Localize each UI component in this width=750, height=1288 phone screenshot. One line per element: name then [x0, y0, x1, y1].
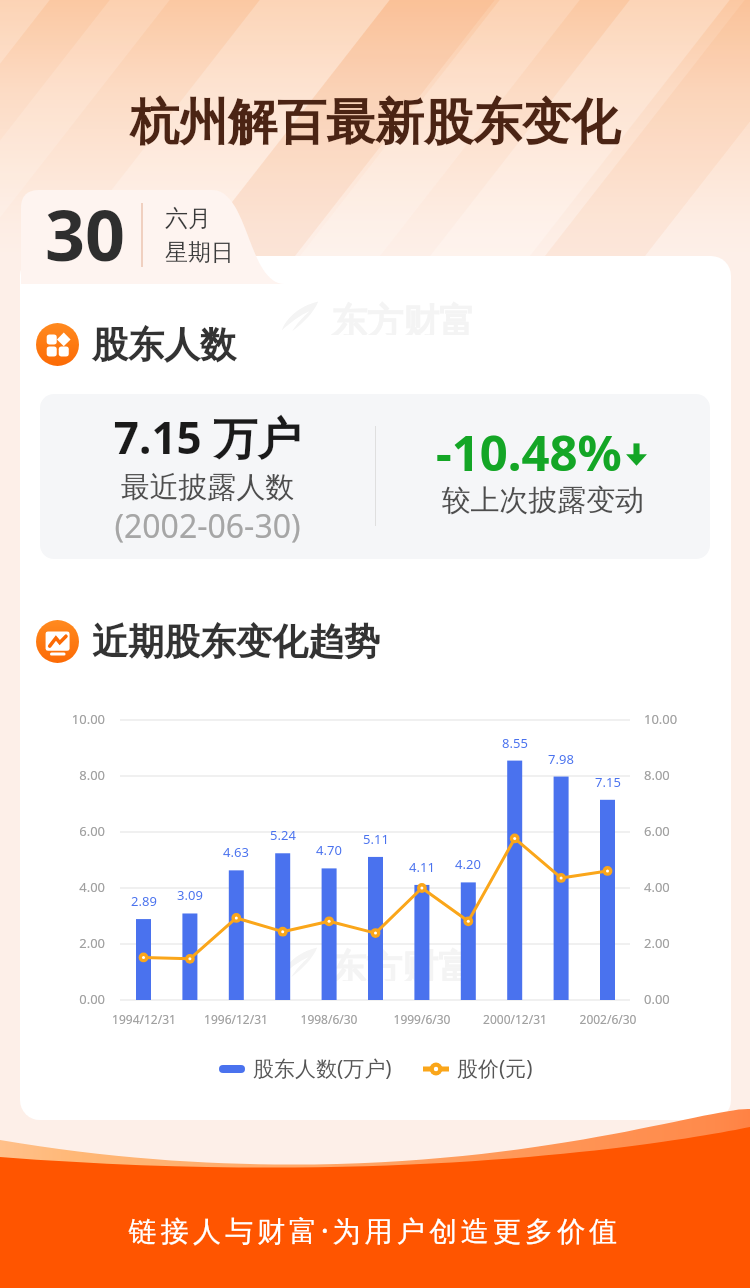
staticText: 1998/6/30	[274, 1011, 384, 1027]
staticText: 7.15 万户	[40, 407, 375, 467]
staticText: 4.20	[438, 855, 498, 873]
staticText: 股东人数	[92, 322, 236, 367]
staticText: 最近披露人数	[40, 469, 375, 506]
staticText: (2002-06-30)	[40, 504, 375, 548]
staticText: 0.00	[644, 990, 704, 1008]
staticText: 链接人与财富·为用户创造更多价值	[0, 1211, 750, 1249]
staticText: 杭州解百最新股东变化	[0, 92, 750, 154]
button[interactable]: 股东人数	[36, 322, 236, 367]
staticText: 8.00	[45, 766, 105, 784]
staticText: 较上次披露变动	[376, 482, 710, 519]
staticText: -10.48%	[436, 419, 622, 486]
staticText: 六月	[165, 204, 211, 233]
staticText: 10.00	[644, 710, 704, 728]
staticText: 0.00	[45, 990, 105, 1008]
staticText: 7.15	[578, 773, 638, 791]
staticText: 1999/6/30	[367, 1011, 477, 1027]
staticText: 30	[45, 186, 126, 280]
staticText: 1996/12/31	[181, 1011, 291, 1027]
staticText: 10.00	[45, 710, 105, 728]
staticText: 6.00	[644, 822, 704, 840]
staticText: 股价(元)	[457, 1054, 533, 1083]
staticText: 2002/6/30	[553, 1011, 663, 1027]
staticText: 近期股东变化趋势	[92, 619, 380, 664]
button[interactable]	[21, 190, 321, 284]
staticText: 4.00	[644, 878, 704, 896]
staticText: 股东人数(万户)	[253, 1054, 392, 1083]
staticText: 8.00	[644, 766, 704, 784]
staticText: 4.70	[299, 841, 359, 859]
staticText: 4.63	[206, 843, 266, 861]
staticText: 3.09	[160, 886, 220, 904]
staticText: 东方财富	[330, 945, 474, 981]
staticText: 8.55	[485, 734, 545, 752]
staticText: 6.00	[45, 822, 105, 840]
staticText: 2.00	[644, 934, 704, 952]
staticText: 2.00	[45, 934, 105, 952]
staticText: 星期日	[165, 238, 234, 267]
button[interactable]: 近期股东变化趋势	[36, 619, 380, 664]
staticText: 4.11	[392, 858, 452, 876]
staticText: 东方财富	[331, 299, 475, 335]
staticText: 1994/12/31	[89, 1011, 199, 1027]
staticText: 7.98	[531, 750, 591, 768]
staticText: 4.00	[45, 878, 105, 896]
staticText: 2000/12/31	[460, 1011, 570, 1027]
staticText: 5.11	[346, 830, 406, 848]
staticText: 2.89	[114, 892, 174, 910]
other: 近期股东变化趋势	[36, 620, 79, 663]
staticText: 5.24	[253, 826, 313, 844]
other: 股东人数	[36, 323, 79, 366]
